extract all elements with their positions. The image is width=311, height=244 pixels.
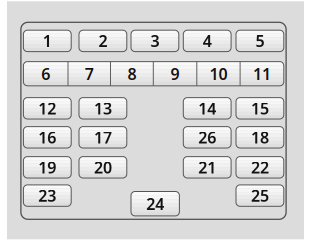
staticText: 19: [38, 157, 56, 178]
button[interactable]: 22: [236, 157, 284, 178]
button[interactable]: 7: [68, 62, 110, 86]
button[interactable]: 26: [183, 127, 231, 148]
staticText: 4: [203, 30, 212, 51]
button[interactable]: 20: [79, 157, 127, 178]
staticText: 6: [41, 63, 50, 84]
button[interactable]: 9: [153, 62, 197, 86]
staticText: 10: [209, 63, 227, 84]
staticText: 13: [94, 98, 112, 119]
button[interactable]: 18: [236, 127, 284, 148]
staticText: 14: [198, 98, 216, 119]
button[interactable]: 11: [240, 62, 284, 86]
staticText: 17: [94, 127, 112, 148]
button[interactable]: 12: [23, 98, 71, 119]
button[interactable]: 23: [23, 185, 71, 206]
button[interactable]: 14: [183, 98, 231, 119]
staticText: 23: [38, 185, 56, 206]
staticText: 5: [255, 30, 264, 51]
staticText: 2: [98, 30, 107, 51]
staticText: 15: [251, 98, 269, 119]
staticText: 22: [251, 157, 269, 178]
button[interactable]: 4: [183, 30, 231, 52]
button[interactable]: 10: [197, 62, 240, 86]
staticText: 20: [94, 157, 112, 178]
button[interactable]: 2: [79, 30, 127, 52]
button[interactable]: 17: [79, 127, 127, 148]
button[interactable]: 15: [236, 98, 284, 119]
button[interactable]: 24: [131, 191, 179, 216]
staticText: 16: [38, 127, 56, 148]
button[interactable]: 19: [23, 157, 71, 178]
button[interactable]: 8: [110, 62, 153, 86]
staticText: 7: [85, 63, 94, 84]
button[interactable]: 6: [23, 62, 68, 86]
staticText: 8: [127, 63, 136, 84]
button[interactable]: 5: [236, 30, 284, 52]
button[interactable]: 21: [183, 157, 231, 178]
staticText: 12: [38, 98, 56, 119]
staticText: 26: [198, 127, 216, 148]
staticText: 18: [251, 127, 269, 148]
staticText: 1: [43, 30, 52, 51]
button[interactable]: 3: [131, 30, 179, 52]
staticText: 11: [253, 63, 271, 84]
button[interactable]: 16: [23, 127, 71, 148]
staticText: 3: [150, 30, 159, 51]
button[interactable]: 13: [79, 98, 127, 119]
staticText: 21: [198, 157, 216, 178]
button[interactable]: 25: [236, 185, 284, 206]
staticText: 24: [146, 193, 164, 214]
button[interactable]: 1: [23, 30, 71, 52]
staticText: 9: [171, 63, 180, 84]
staticText: 25: [251, 185, 269, 206]
